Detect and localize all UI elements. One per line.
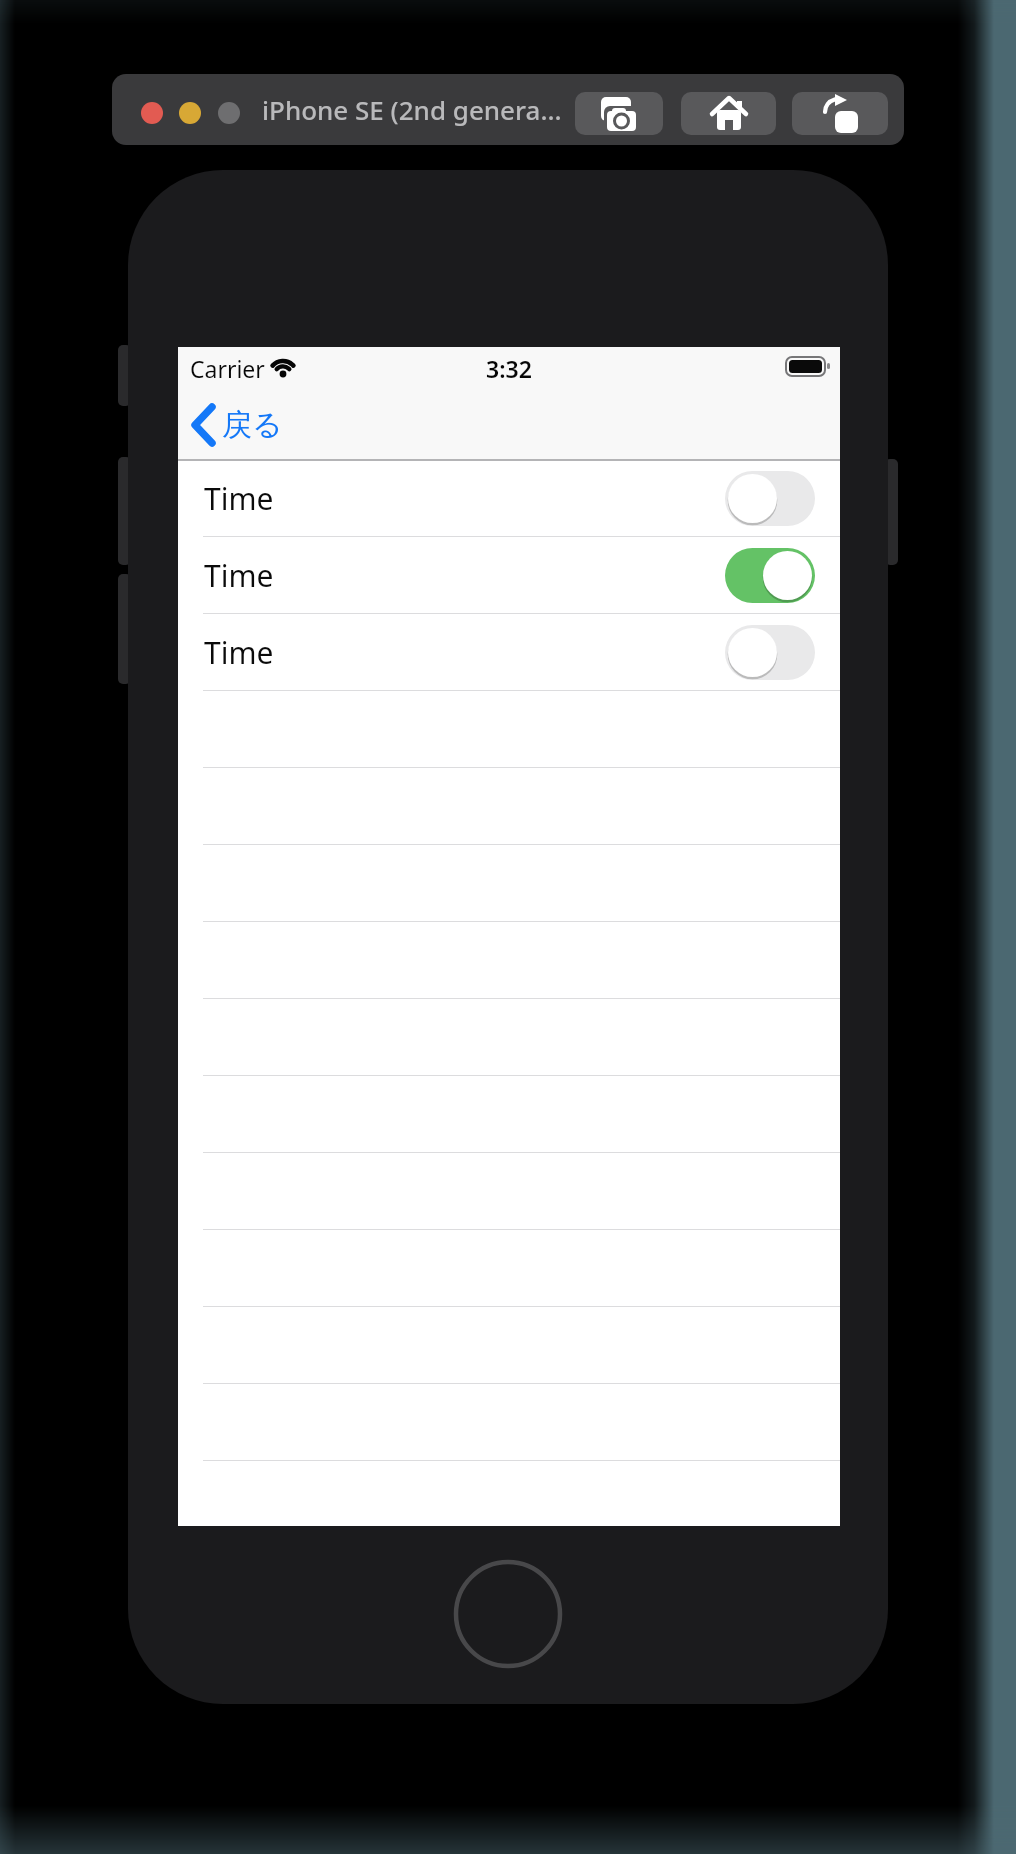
button[interactable]	[141, 102, 163, 124]
staticText: iPhone SE (2nd genera...	[262, 92, 562, 127]
button[interactable]: Time	[178, 460, 840, 537]
staticText: 戻る	[222, 406, 283, 444]
button[interactable]	[179, 102, 201, 124]
button[interactable]	[575, 92, 663, 135]
button[interactable]: Time	[178, 614, 840, 691]
staticText: Time	[204, 555, 274, 596]
button[interactable]	[681, 92, 776, 135]
staticText: 3:32	[486, 353, 532, 381]
button[interactable]	[725, 471, 815, 526]
button[interactable]	[725, 625, 815, 680]
staticText: Time	[204, 632, 274, 673]
staticText: Carrier	[190, 353, 265, 381]
button[interactable]	[218, 102, 240, 124]
staticText: Time	[204, 478, 274, 519]
button[interactable]: 戻る	[191, 404, 301, 446]
button[interactable]	[792, 92, 888, 135]
button[interactable]: Time	[178, 537, 840, 614]
button[interactable]	[725, 548, 815, 603]
